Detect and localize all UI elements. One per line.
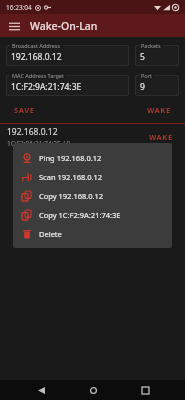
staticText: WAKE — [149, 132, 173, 142]
staticText: Ping 192.168.0.12 — [39, 153, 102, 163]
button[interactable]: Back — [26, 380, 56, 400]
button[interactable]: 9 — [135, 75, 179, 96]
staticText: Scan 192.168.0.12 — [39, 172, 103, 182]
staticText: 192.168.0.12 — [7, 126, 58, 138]
button[interactable]: Copy 192.168.0.12 — [13, 186, 172, 205]
staticText: Copy 192.168.0.12 — [39, 191, 104, 201]
button[interactable]: Delete — [13, 224, 172, 243]
staticText: Port — [141, 72, 152, 79]
button[interactable]: 5 — [135, 45, 179, 66]
staticText: SAVE — [14, 105, 35, 115]
button[interactable]: 192.168.0.12 — [0, 124, 185, 150]
staticText: Broadcast Address — [12, 42, 61, 49]
button[interactable]: Home — [78, 380, 108, 400]
button[interactable]: 1C:F2:9A:21:74:3E — [6, 75, 129, 96]
staticText: Delete — [39, 229, 62, 239]
staticText: 5 — [140, 51, 145, 63]
button[interactable]: Ping 192.168.0.12 — [13, 148, 172, 167]
staticText: Copy 1C:F2:9A:21:74:3E — [39, 210, 121, 220]
staticText: 9 — [140, 81, 145, 93]
button[interactable]: Copy 1C:F2:9A:21:74:3E — [13, 205, 172, 224]
staticText: MAC Address Target — [12, 72, 64, 79]
button[interactable]: 192.168.0.12 — [6, 45, 129, 66]
button[interactable]: WAKE — [141, 102, 177, 118]
staticText: Wake-On-Lan — [30, 19, 98, 33]
staticText: 1C:F2:9A:21:74:3E — [11, 81, 82, 93]
staticText: 192.168.0.12 — [11, 51, 62, 63]
button[interactable]: Recent apps — [130, 380, 160, 400]
button[interactable]: Scan 192.168.0.12 — [13, 167, 172, 186]
staticText: Packets — [141, 42, 161, 49]
staticText: WAKE — [147, 105, 171, 115]
button[interactable]: SAVE — [8, 102, 41, 118]
button[interactable]: Open navigation menu — [5, 17, 23, 35]
staticText: 16:23:04 — [6, 3, 32, 12]
staticText: 1C:F2:9A:21:74:3E / 9 — [7, 139, 71, 148]
button[interactable]: WAKE — [144, 129, 178, 145]
